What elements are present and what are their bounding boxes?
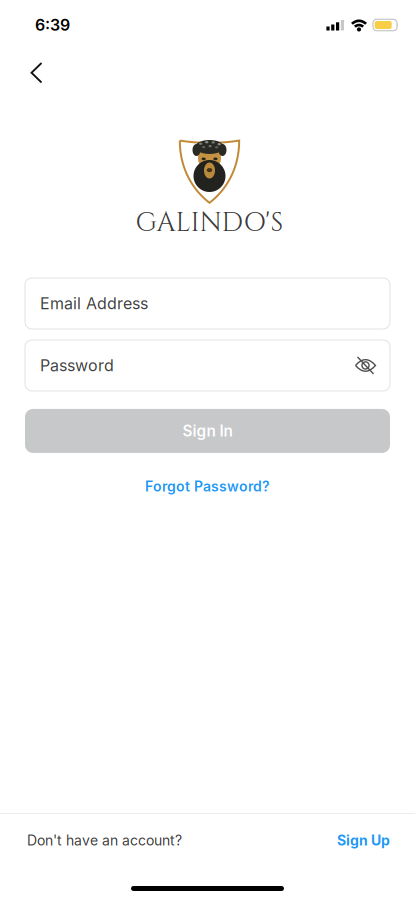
button[interactable]: Sign In [25, 409, 390, 453]
button[interactable]: Forgot Password? [145, 478, 270, 495]
staticText: 6:39 [35, 15, 70, 35]
staticText: Sign Up [337, 832, 390, 849]
button[interactable]: Back [0, 55, 42, 91]
staticText: GALINDO'S [135, 205, 283, 241]
staticText: Email Address [40, 294, 148, 313]
staticText: Don't have an account? [27, 832, 182, 849]
button[interactable]: Sign Up [337, 832, 415, 849]
button[interactable]: Show password [355, 358, 390, 372]
staticText: Forgot Password? [145, 478, 270, 495]
staticText: Sign In [182, 422, 232, 440]
staticText: Password [40, 356, 114, 375]
